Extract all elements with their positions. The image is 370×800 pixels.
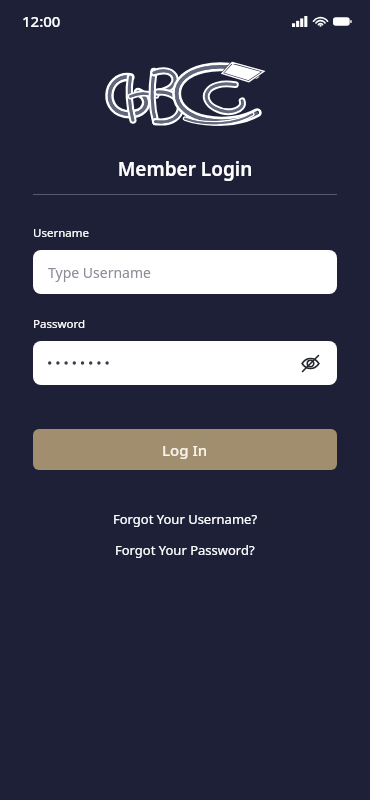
button[interactable]: Forgot Your Password? bbox=[33, 541, 337, 559]
button[interactable]: Show password bbox=[295, 348, 325, 378]
staticText: Type Username bbox=[48, 263, 151, 282]
staticText: Forgot Your Password? bbox=[115, 541, 255, 559]
staticText: Member Login bbox=[0, 156, 370, 182]
button[interactable]: Log In bbox=[33, 429, 337, 470]
button[interactable]: Type Username bbox=[33, 250, 337, 294]
button[interactable]: Show password bbox=[33, 341, 337, 385]
staticText: Log In bbox=[162, 440, 208, 460]
staticText: Username bbox=[33, 225, 89, 241]
staticText: 12:00 bbox=[22, 11, 61, 31]
staticText: Password bbox=[33, 316, 86, 332]
button[interactable]: Forgot Your Username? bbox=[33, 510, 337, 528]
staticText: Forgot Your Username? bbox=[113, 510, 258, 528]
